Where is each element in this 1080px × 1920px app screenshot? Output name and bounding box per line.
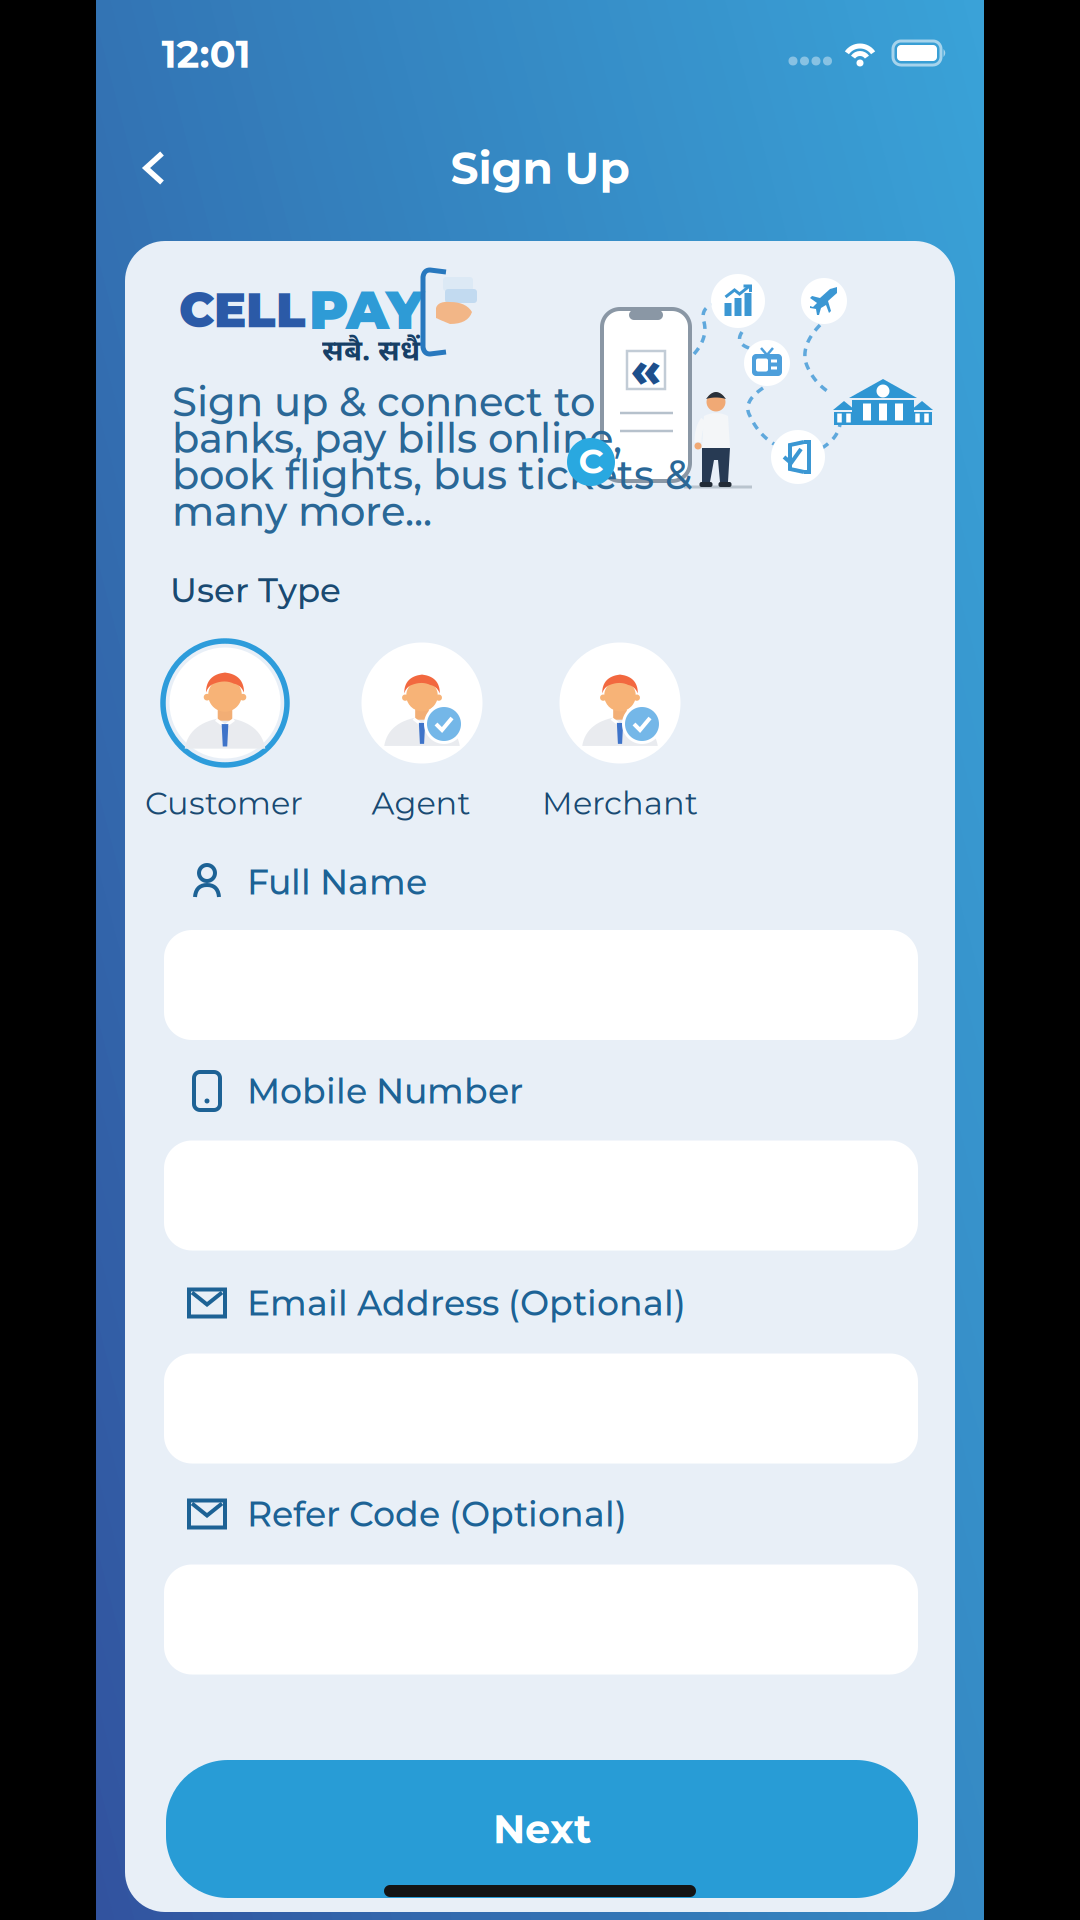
staticText: Full Name xyxy=(247,861,427,903)
staticText: banks, pay bills online, xyxy=(172,414,622,463)
staticText: Merchant xyxy=(542,783,698,822)
staticText: सबै. सधैं xyxy=(322,329,420,368)
button[interactable]: Next xyxy=(166,1760,918,1898)
button[interactable]: Customer xyxy=(160,638,290,768)
staticText: User Type xyxy=(170,569,341,611)
button[interactable]: Back xyxy=(143,151,165,184)
staticText: Agent xyxy=(371,783,470,822)
staticText: Next xyxy=(493,1805,591,1853)
staticText: 12:01 xyxy=(161,30,250,77)
staticText: Mobile Number xyxy=(247,1070,523,1112)
staticText: Customer xyxy=(145,783,303,822)
staticText: Sign Up xyxy=(450,141,629,195)
staticText: many more... xyxy=(172,487,432,536)
button[interactable]: Merchant xyxy=(559,642,681,764)
staticText: CELL xyxy=(179,281,306,339)
staticText: Sign up & connect to xyxy=(172,378,595,426)
staticText: Refer Code (Optional) xyxy=(247,1493,627,1535)
button[interactable]: Agent xyxy=(361,642,483,764)
staticText: PAY xyxy=(309,277,424,342)
staticText: « xyxy=(630,339,661,399)
staticText: Email Address (Optional) xyxy=(247,1282,686,1324)
staticText: book flights, bus tickets & xyxy=(172,451,692,499)
staticText: C xyxy=(578,440,603,482)
